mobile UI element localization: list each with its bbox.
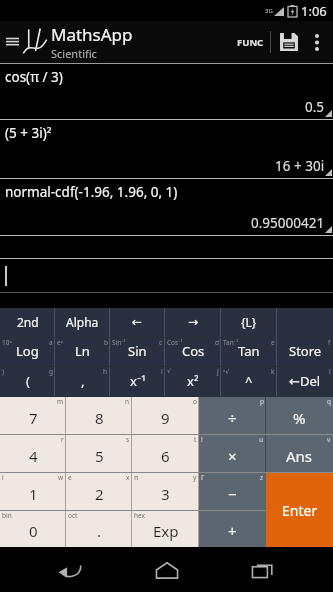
button[interactable]: {L} bbox=[221, 308, 277, 337]
button[interactable]: f bbox=[277, 338, 333, 366]
button[interactable]: → bbox=[165, 308, 221, 337]
staticText: eˣ bbox=[57, 338, 63, 347]
button[interactable]: i bbox=[0, 473, 66, 510]
button[interactable]: cos(π / 3) bbox=[0, 64, 333, 119]
staticText: 6 bbox=[161, 446, 170, 466]
button[interactable]: Save bbox=[271, 27, 307, 57]
button[interactable]: m bbox=[0, 397, 66, 434]
staticText: v bbox=[327, 435, 331, 444]
button[interactable]: s bbox=[66, 435, 132, 472]
button[interactable]: 10ˣ bbox=[0, 338, 55, 366]
button[interactable]: Home bbox=[140, 550, 194, 590]
button[interactable]: Enter bbox=[266, 473, 333, 547]
staticText: e bbox=[271, 338, 275, 347]
staticText: k bbox=[271, 367, 275, 376]
staticText: 5 bbox=[95, 446, 104, 466]
button[interactable]: Γ bbox=[199, 473, 266, 510]
staticText: a bbox=[49, 338, 53, 347]
staticText: 7 bbox=[29, 408, 38, 428]
staticText: 4 bbox=[29, 446, 38, 466]
button[interactable]: Sin⁻¹ bbox=[110, 338, 165, 366]
staticText: p bbox=[260, 397, 264, 406]
button[interactable]: ← bbox=[110, 308, 165, 337]
staticText: Sin⁻¹ bbox=[112, 338, 126, 347]
staticText: 1 bbox=[29, 484, 38, 504]
button[interactable]: 2nd bbox=[0, 308, 55, 337]
button[interactable]: o bbox=[132, 397, 199, 434]
staticText: e bbox=[68, 473, 72, 482]
staticText: ( bbox=[26, 372, 30, 390]
staticText: ^ bbox=[245, 372, 253, 390]
staticText: . bbox=[97, 521, 102, 541]
button[interactable]: q bbox=[266, 397, 333, 434]
button[interactable]: n bbox=[66, 397, 132, 434]
staticText: f bbox=[328, 338, 331, 347]
button[interactable]: eˣ bbox=[55, 338, 110, 366]
staticText: Ans bbox=[286, 446, 313, 466]
staticText: y bbox=[193, 473, 197, 482]
staticText: Γ bbox=[201, 473, 205, 482]
button[interactable]: (5 + 3i)² bbox=[0, 120, 333, 178]
staticText: u bbox=[259, 435, 264, 444]
button[interactable]: l bbox=[277, 367, 333, 396]
staticText: → bbox=[188, 315, 199, 329]
staticText: normal-cdf(-1.96, 1.96, 0, 1) bbox=[5, 183, 178, 201]
button[interactable]: Tan⁻¹ bbox=[221, 338, 277, 366]
button[interactable]: bin bbox=[0, 511, 66, 547]
button[interactable]: e bbox=[66, 473, 132, 510]
button[interactable]: p bbox=[199, 397, 266, 434]
staticText: cos(π / 3) bbox=[5, 68, 63, 86]
button[interactable]: oct bbox=[66, 511, 132, 547]
button[interactable]: ˣ√ bbox=[221, 367, 277, 396]
button[interactable]: v bbox=[266, 435, 333, 472]
staticText: + bbox=[228, 521, 237, 541]
staticText: x⁻¹ bbox=[130, 372, 146, 390]
staticText: , bbox=[81, 372, 85, 390]
staticText: Tan⁻¹ bbox=[223, 338, 239, 347]
button[interactable]: π bbox=[132, 473, 199, 510]
staticText: π bbox=[134, 473, 139, 482]
staticText: × bbox=[228, 446, 237, 466]
button[interactable]: t bbox=[132, 435, 199, 472]
button[interactable]: hex bbox=[132, 511, 199, 547]
button[interactable]: h bbox=[55, 367, 110, 396]
button[interactable]: √ bbox=[165, 367, 221, 396]
button[interactable]: + bbox=[199, 511, 266, 547]
button[interactable]: ! bbox=[199, 435, 266, 472]
staticText: 0 bbox=[29, 521, 38, 541]
staticText: 2nd bbox=[17, 314, 39, 330]
button[interactable]: Recent apps bbox=[236, 550, 290, 590]
staticText: 2 bbox=[95, 484, 104, 504]
staticText: ÷ bbox=[228, 408, 237, 428]
staticText: ! bbox=[201, 435, 203, 444]
staticText: x² bbox=[187, 372, 199, 390]
staticText: hex bbox=[134, 511, 145, 520]
button[interactable]: i bbox=[110, 367, 165, 396]
staticText: o bbox=[193, 397, 197, 406]
button[interactable]: ) bbox=[0, 367, 55, 396]
staticText: 16 + 30i bbox=[275, 157, 325, 175]
button[interactable]: Cos⁻¹ bbox=[165, 338, 221, 366]
staticText: d bbox=[215, 338, 219, 347]
button[interactable]: r bbox=[0, 435, 66, 472]
staticText: Store bbox=[289, 342, 322, 360]
button[interactable]: Back bbox=[43, 550, 97, 590]
button[interactable]: More options bbox=[307, 28, 327, 57]
staticText: 8 bbox=[95, 408, 104, 428]
staticText: Cos bbox=[182, 342, 205, 360]
button[interactable]: Open navigation menu bbox=[4, 23, 135, 61]
button[interactable]: FUNC bbox=[231, 28, 270, 57]
button[interactable] bbox=[0, 259, 333, 292]
staticText: 10ˣ bbox=[2, 338, 12, 347]
staticText: t bbox=[194, 435, 197, 444]
staticText: l bbox=[329, 367, 331, 376]
staticText: ) bbox=[2, 367, 4, 376]
staticText: r bbox=[61, 435, 64, 444]
staticText: √ bbox=[167, 367, 172, 375]
staticText: j bbox=[217, 367, 219, 376]
button[interactable]: normal-cdf(-1.96, 1.96, 0, 1) bbox=[0, 179, 333, 235]
button[interactable]: Alpha bbox=[55, 308, 110, 337]
staticText: w bbox=[58, 473, 64, 482]
staticText: % bbox=[293, 408, 306, 428]
